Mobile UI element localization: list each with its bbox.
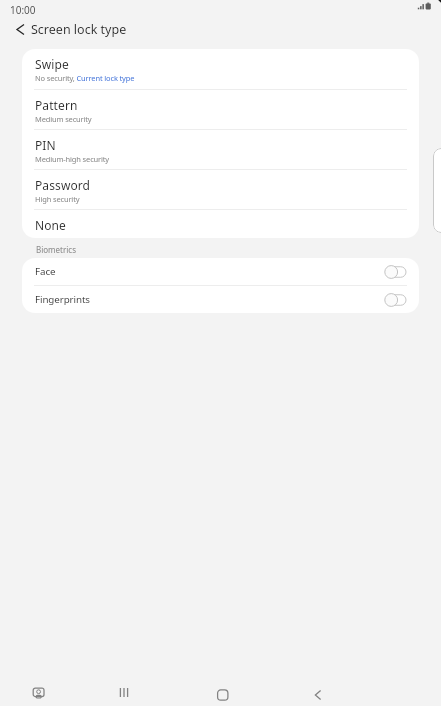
- staticText: Password: [35, 177, 91, 193]
- staticText: High security: [35, 194, 80, 204]
- staticText: Swipe: [35, 56, 69, 72]
- staticText: PIN: [35, 137, 56, 153]
- staticText: Face: [35, 265, 56, 278]
- button[interactable]: Password: [22, 170, 419, 209]
- button[interactable]: Swipe: [22, 49, 419, 89]
- button[interactable]: PIN: [22, 130, 419, 169]
- button[interactable]: Fingerprints: [22, 286, 419, 313]
- staticText: Screen lock type: [31, 21, 127, 38]
- button[interactable]: [221, 676, 331, 706]
- staticText: Biometrics: [36, 244, 77, 255]
- button[interactable]: None: [22, 210, 419, 238]
- staticText: Fingerprints: [35, 293, 90, 306]
- staticText: None: [35, 217, 66, 233]
- staticText: No security, Current lock type: [35, 73, 135, 83]
- button[interactable]: [8, 17, 31, 42]
- staticText: Pattern: [35, 97, 78, 113]
- staticText: Medium security: [35, 114, 92, 124]
- button[interactable]: [111, 676, 221, 706]
- button[interactable]: Face: [22, 258, 419, 285]
- staticText: Medium-high security: [35, 154, 110, 164]
- button[interactable]: Pattern: [22, 90, 419, 129]
- staticText: 10:00: [10, 3, 36, 17]
- button[interactable]: [0, 676, 111, 706]
